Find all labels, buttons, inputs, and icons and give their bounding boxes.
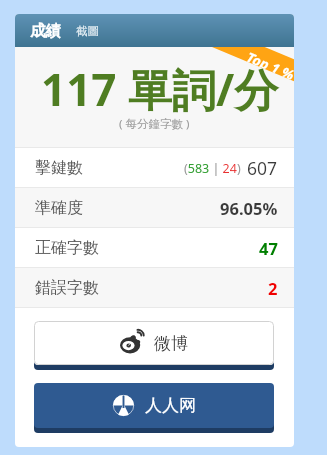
- staticText: 正確字數: [35, 238, 99, 258]
- other: Top 1 percent badge: [15, 47, 294, 147]
- staticText: 2: [268, 277, 278, 299]
- staticText: 準確度: [35, 198, 83, 218]
- button[interactable]: 正確字數: [15, 228, 294, 267]
- button[interactable]: 準確度: [15, 188, 294, 227]
- button[interactable]: 錯誤字數: [15, 268, 294, 307]
- staticText: 607: [247, 156, 278, 180]
- other: Weibo: [120, 333, 143, 354]
- staticText: 96.05%: [220, 197, 278, 219]
- staticText: 47: [259, 237, 278, 259]
- staticText: ( 每分鐘字數 ): [119, 116, 190, 132]
- other: Renren: [113, 395, 134, 416]
- button[interactable]: Renren: [34, 383, 274, 428]
- staticText: 人人网: [145, 395, 196, 416]
- staticText: 錯誤字數: [35, 278, 99, 298]
- staticText: 微博: [154, 333, 188, 354]
- staticText: 擊鍵數: [35, 158, 83, 178]
- staticText: (583 | 24): [184, 160, 241, 177]
- button[interactable]: 截圖: [76, 24, 99, 38]
- staticText: 成績: [30, 21, 61, 41]
- staticText: 117 單詞/分: [41, 59, 279, 119]
- button[interactable]: Weibo: [34, 321, 274, 365]
- button[interactable]: 擊鍵數: [15, 148, 294, 187]
